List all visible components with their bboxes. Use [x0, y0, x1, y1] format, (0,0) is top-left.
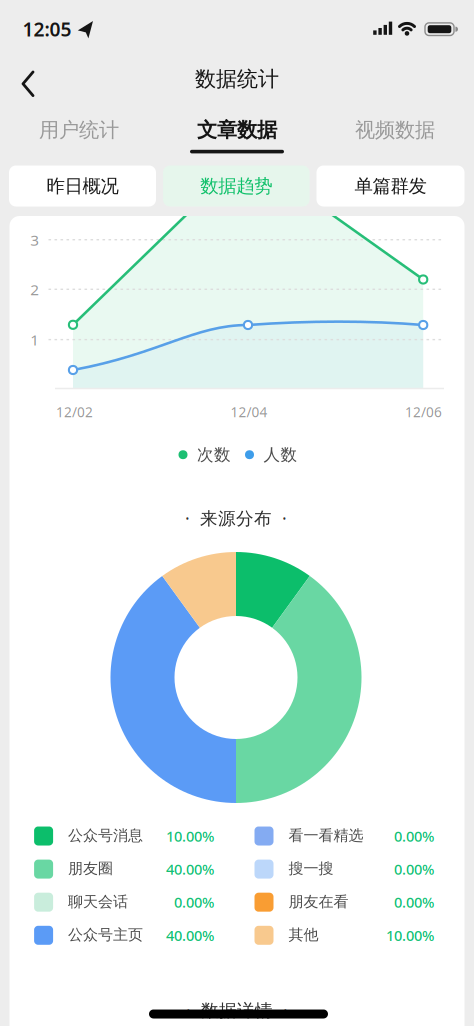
staticText: 人数: [263, 444, 297, 465]
staticText: 3: [30, 229, 39, 250]
staticText: 40.00%: [166, 859, 214, 879]
staticText: 公众号主页: [68, 925, 143, 944]
staticText: 12/04: [230, 403, 267, 421]
staticText: 0.00%: [394, 859, 434, 879]
button[interactable]: 单篇群发: [316, 165, 464, 206]
staticText: 搜一搜: [288, 859, 333, 878]
staticText: 公众号消息: [68, 826, 143, 845]
staticText: 昨日概况: [46, 174, 118, 198]
staticText: 12/06: [405, 403, 442, 421]
staticText: 数据趋势: [200, 174, 272, 198]
staticText: 2: [30, 279, 39, 300]
button[interactable]: 文章数据: [167, 112, 307, 148]
staticText: · 数据详情 ·: [186, 998, 288, 1022]
staticText: 次数: [197, 444, 231, 465]
staticText: · 来源分布 ·: [185, 506, 287, 530]
staticText: 看一看精选: [288, 826, 363, 845]
staticText: 单篇群发: [354, 174, 426, 198]
staticText: 12/02: [56, 403, 93, 421]
staticText: 朋友在看: [288, 892, 348, 911]
staticText: 聊天会话: [68, 892, 128, 911]
staticText: 0.00%: [394, 826, 434, 846]
button[interactable]: 昨日概况: [9, 165, 156, 206]
staticText: 其他: [288, 925, 318, 944]
staticText: 10.00%: [386, 925, 434, 945]
staticText: 0.00%: [394, 892, 434, 912]
button[interactable]: 视频数据: [325, 112, 465, 148]
staticText: 文章数据: [197, 117, 277, 143]
staticText: 10.00%: [166, 826, 214, 846]
staticText: 12:05: [22, 16, 71, 42]
staticText: 朋友圈: [68, 859, 113, 878]
staticText: 视频数据: [355, 117, 435, 143]
button[interactable]: Back: [6, 62, 50, 98]
staticText: 数据统计: [195, 66, 279, 92]
staticText: 1: [30, 329, 39, 350]
button[interactable]: 数据趋势: [163, 165, 310, 206]
staticText: 0.00%: [174, 892, 214, 912]
staticText: 用户统计: [39, 117, 119, 143]
staticText: 40.00%: [166, 925, 214, 945]
button[interactable]: 用户统计: [9, 112, 149, 148]
